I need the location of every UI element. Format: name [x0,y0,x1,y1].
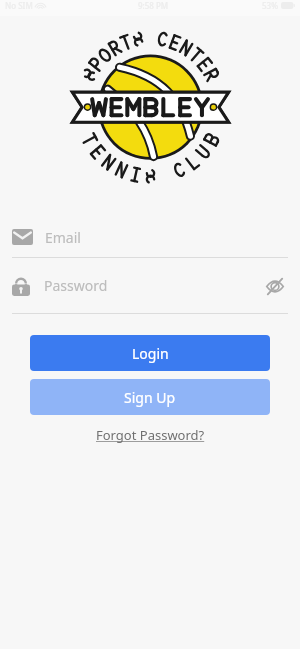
staticText: Email [45,228,81,247]
button[interactable]: Sign Up [30,379,270,415]
button[interactable]: Login [30,335,270,371]
staticText: Sign Up [124,388,176,407]
staticText: No SIM [5,0,33,11]
staticText: 9:58 PM [138,0,169,11]
staticText: Password [44,276,108,295]
button[interactable]: Email [0,217,300,257]
staticText: Login [132,344,169,363]
staticText: Forgot Password? [96,426,205,444]
staticText: 53% [262,0,278,11]
button[interactable]: Forgot Password? [88,423,213,447]
button[interactable]: Password [0,258,300,313]
button[interactable]: Show password [262,273,288,299]
